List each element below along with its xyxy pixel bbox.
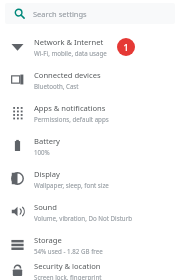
button[interactable]: Connected devices	[0, 63, 180, 96]
staticText: Wi-Fi, mobile, data usage	[34, 49, 107, 57]
staticText: Storage	[34, 235, 62, 245]
button[interactable]: Storage	[0, 228, 180, 261]
staticText: Security & location	[34, 261, 101, 271]
staticText: Display	[34, 169, 60, 179]
staticText: Permissions, default apps	[34, 115, 109, 123]
button[interactable]: Security & location	[0, 261, 180, 280]
staticText: Apps & notifications	[34, 103, 106, 113]
staticText: Search settings	[33, 9, 87, 19]
staticText: Sound	[34, 202, 57, 212]
staticText: Screen lock, fingerprint	[34, 273, 102, 280]
button[interactable]: Display	[0, 162, 180, 195]
staticText: Volume, vibration, Do Not Disturb	[34, 214, 133, 222]
staticText: Battery	[34, 136, 60, 146]
button[interactable]: Sound	[0, 195, 180, 228]
button[interactable]: Apps & notifications	[0, 96, 180, 129]
staticText: Wallpaper, sleep, font size	[34, 181, 109, 189]
staticText: 100%	[34, 148, 50, 156]
button[interactable]: Battery	[0, 129, 180, 162]
button[interactable]: Network & Internet	[0, 30, 180, 63]
button[interactable]: Search settings	[5, 3, 175, 24]
staticText: 54% used - 1.82 GB free	[34, 247, 103, 255]
staticText: Network & Internet	[34, 37, 104, 47]
staticText: Bluetooth, Cast	[34, 82, 79, 90]
other: 1 notification	[117, 38, 135, 56]
staticText: Connected devices	[34, 70, 101, 80]
staticText: 1	[123, 41, 129, 53]
